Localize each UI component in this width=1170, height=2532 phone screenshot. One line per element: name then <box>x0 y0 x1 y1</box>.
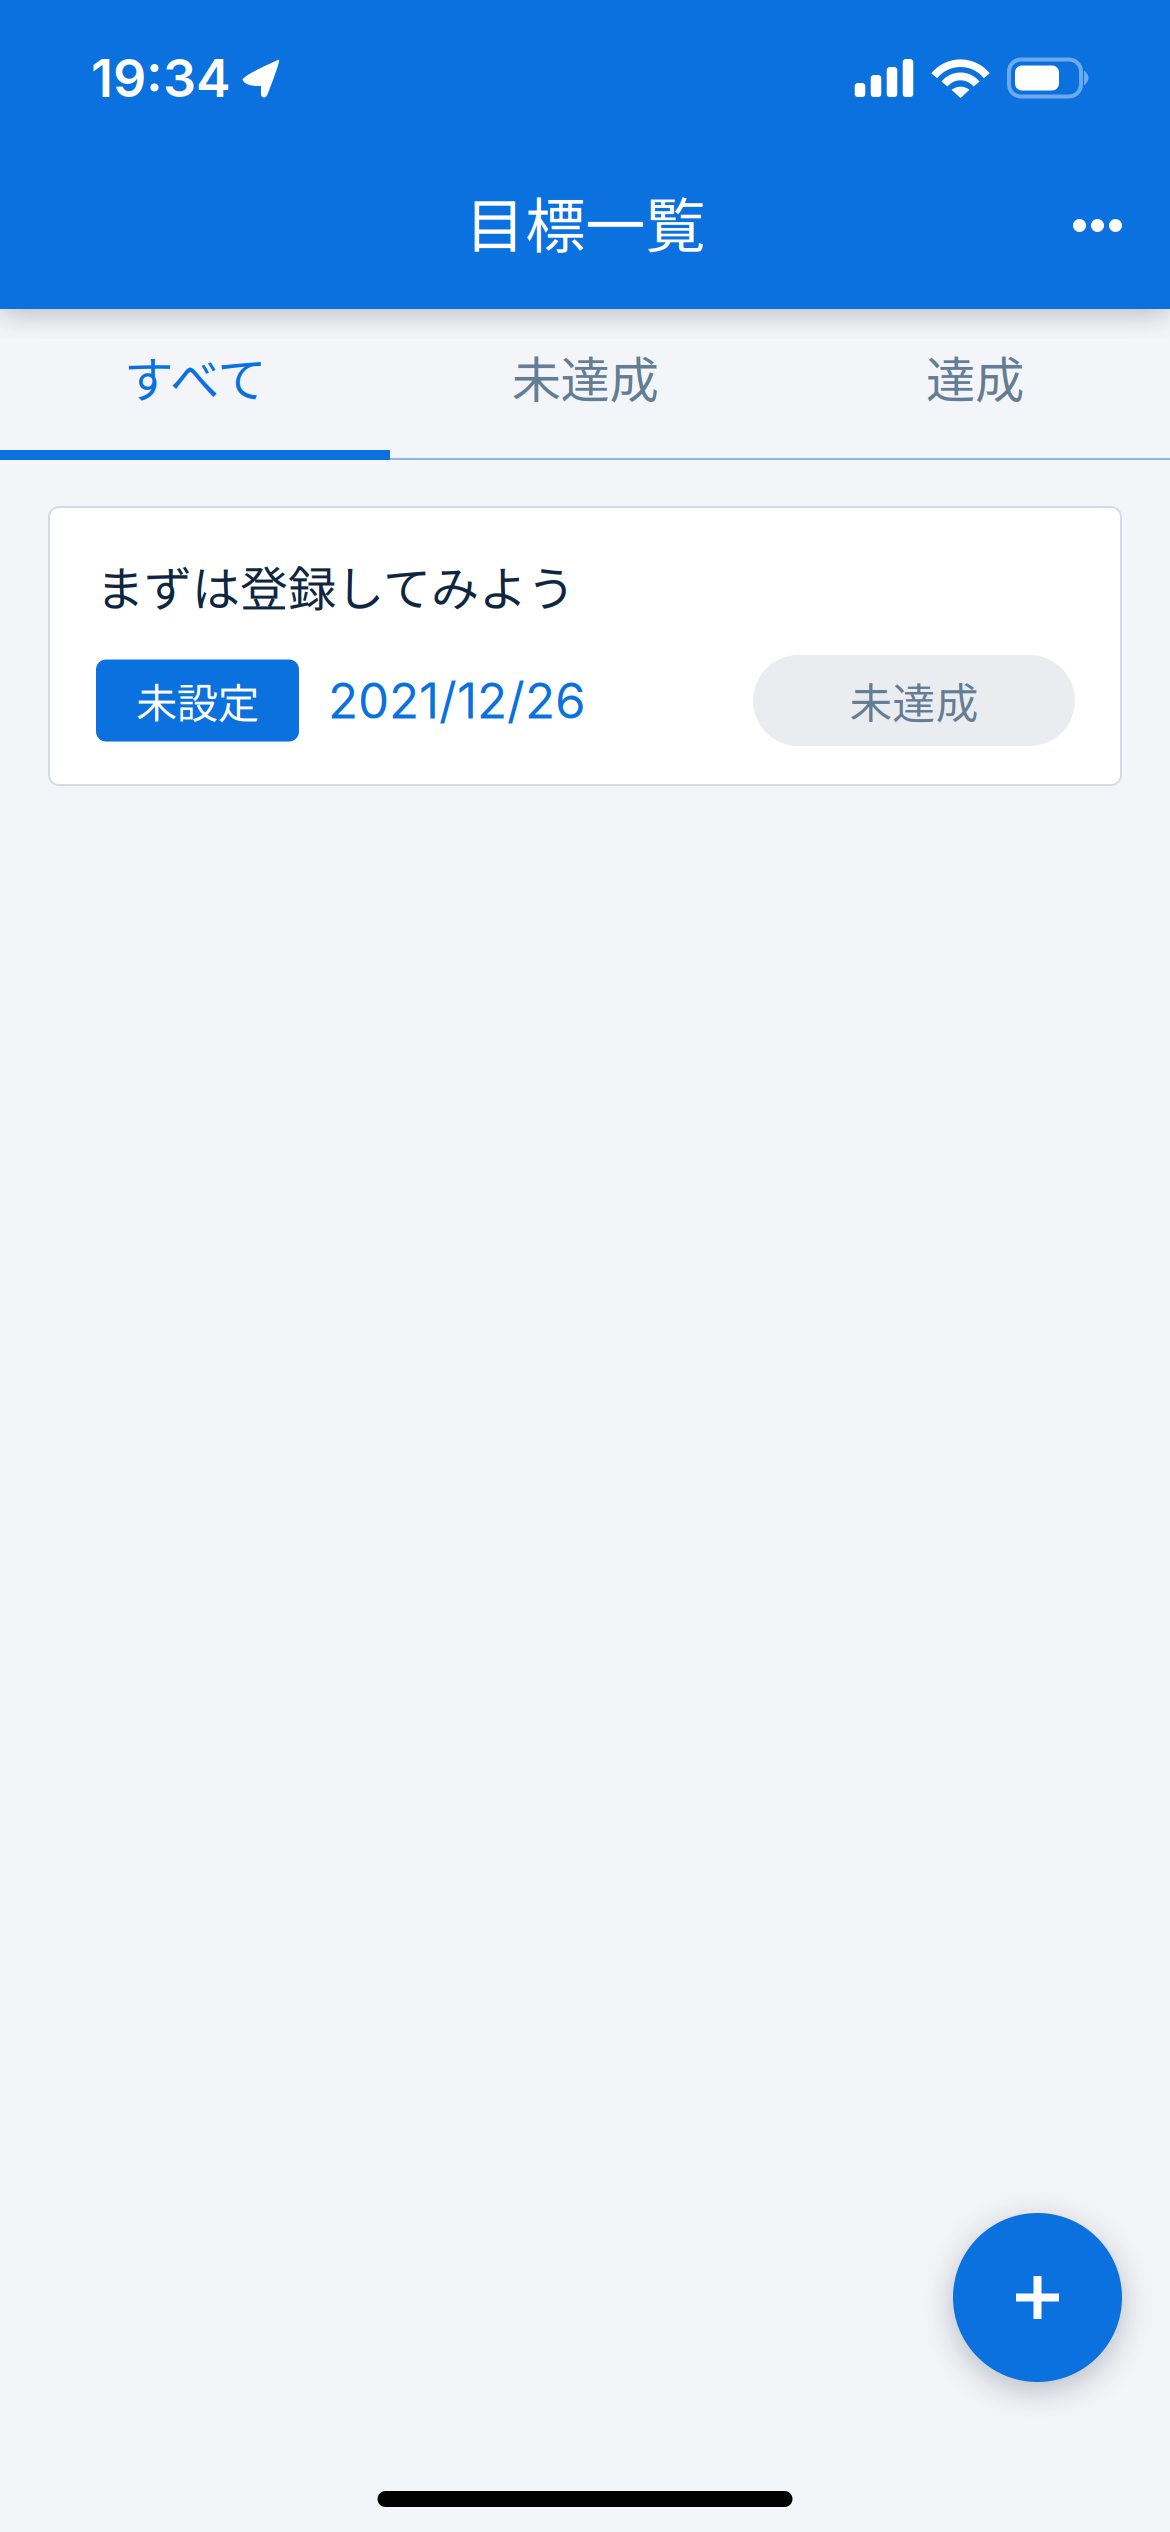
button[interactable]: More options <box>1025 152 1170 291</box>
staticText: 未設定 <box>136 671 259 730</box>
button[interactable]: 達成 <box>780 309 1170 458</box>
button[interactable]: まずは登録してみよう <box>49 507 1121 785</box>
staticText: 19:34 <box>91 46 231 109</box>
staticText: すべて <box>124 341 266 412</box>
staticText: 目標一覧 <box>465 178 705 265</box>
button[interactable]: 未達成 <box>390 309 780 458</box>
button[interactable]: Add goal <box>953 2213 1122 2382</box>
staticText: 未達成 <box>849 670 978 731</box>
staticText: 2021/12/26 <box>328 671 586 730</box>
button[interactable]: すべて <box>0 309 390 458</box>
staticText: 未達成 <box>511 341 658 412</box>
staticText: まずは登録してみよう <box>96 551 575 620</box>
staticText: 達成 <box>926 341 1024 412</box>
